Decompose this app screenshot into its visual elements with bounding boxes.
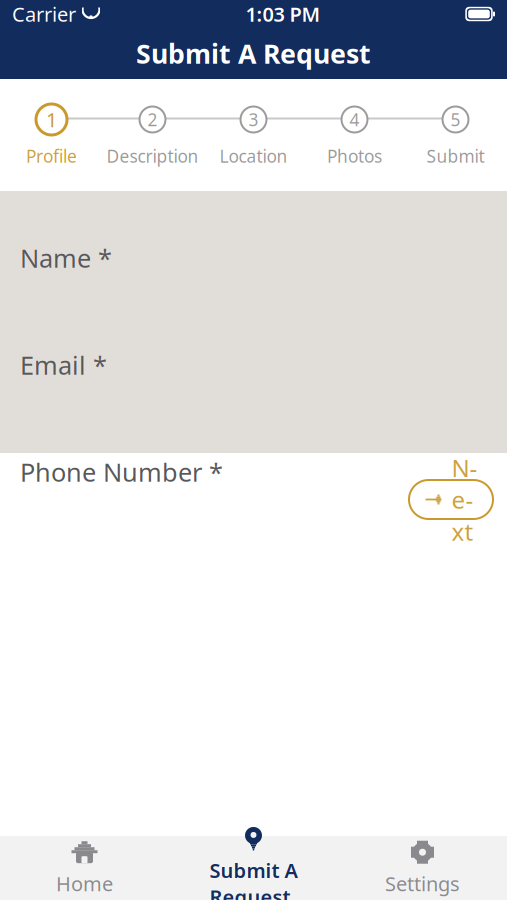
staticText: Phone Number * bbox=[20, 455, 223, 489]
button[interactable]: Home bbox=[0, 836, 169, 900]
button[interactable]: Name * bbox=[0, 218, 507, 298]
staticText: Name * bbox=[20, 241, 112, 275]
button[interactable]: 3 bbox=[203, 100, 304, 170]
button[interactable]: 4 bbox=[304, 100, 405, 170]
button[interactable]: Next bbox=[409, 480, 493, 519]
button[interactable]: Email * bbox=[0, 325, 507, 405]
staticText: 3 bbox=[248, 108, 258, 131]
staticText: Submit A Request bbox=[209, 857, 297, 900]
button[interactable]: Phone Number * bbox=[0, 432, 507, 512]
button[interactable]: 1 bbox=[1, 100, 102, 170]
staticText: 1 bbox=[46, 106, 57, 133]
staticText: 2 bbox=[147, 108, 157, 131]
button[interactable]: 5 bbox=[405, 100, 506, 170]
staticText: 1:03 PM bbox=[245, 1, 320, 27]
staticText: Home bbox=[56, 870, 113, 897]
staticText: Location bbox=[219, 144, 287, 167]
staticText: Photos bbox=[327, 144, 382, 167]
staticText: Next bbox=[451, 452, 477, 547]
staticText: 4 bbox=[349, 108, 359, 131]
staticText: Description bbox=[106, 144, 198, 167]
staticText: 5 bbox=[450, 108, 460, 131]
staticText: Settings bbox=[385, 870, 460, 897]
staticText: Submit bbox=[426, 144, 484, 167]
button[interactable]: 2 bbox=[102, 100, 203, 170]
staticText: Profile bbox=[26, 144, 77, 167]
button[interactable]: Settings bbox=[338, 836, 507, 900]
staticText: Email * bbox=[20, 348, 107, 382]
staticText: Carrier bbox=[12, 1, 76, 27]
staticText: Submit A Request bbox=[136, 36, 371, 71]
button[interactable]: Submit A Request bbox=[169, 836, 338, 900]
